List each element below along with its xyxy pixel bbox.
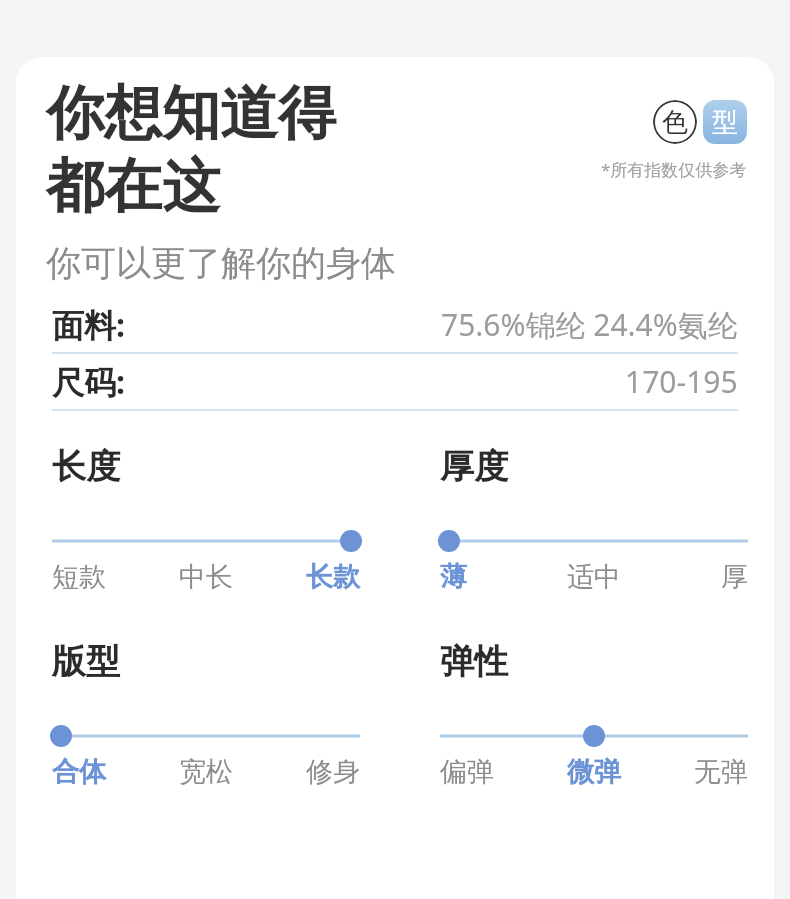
staticText: 型 [712, 106, 738, 139]
staticText: 尺码: [52, 360, 125, 404]
staticText: 75.6%锦纶 24.4%氨纶 [441, 304, 738, 345]
staticText: 短款 [52, 560, 106, 594]
staticText: 偏弹 [440, 755, 494, 789]
button[interactable]: 版型 [52, 640, 360, 789]
button[interactable]: 厚度 [440, 445, 748, 594]
button[interactable]: 长度 [52, 445, 360, 594]
staticText: 宽松 [179, 755, 233, 789]
staticText: 中长 [179, 560, 233, 594]
staticText: 微弹 [567, 755, 621, 789]
button[interactable]: 面料: [52, 297, 738, 354]
staticText: *所有指数仅供参考 [601, 158, 747, 181]
staticText: 适中 [567, 560, 621, 594]
button[interactable]: 尺码: [52, 354, 738, 411]
staticText: 合体 [52, 755, 106, 789]
staticText: 弹性 [440, 640, 508, 683]
staticText: 厚度 [440, 445, 508, 488]
staticText: 薄 [440, 560, 467, 594]
button[interactable]: 色 [653, 100, 697, 144]
staticText: 170-195 [625, 361, 738, 402]
button[interactable]: 型 [703, 100, 747, 144]
staticText: 你想知道得 [46, 77, 336, 150]
staticText: 版型 [52, 640, 120, 683]
staticText: 长款 [306, 560, 360, 594]
staticText: 都在这 [46, 150, 220, 223]
staticText: 长度 [52, 445, 120, 488]
staticText: 修身 [306, 755, 360, 789]
staticText: 无弹 [694, 755, 748, 789]
staticText: 面料: [52, 303, 125, 347]
staticText: 色 [662, 106, 688, 139]
staticText: 你可以更了解你的身体 [46, 241, 396, 285]
button[interactable]: 弹性 [440, 640, 748, 789]
staticText: 厚 [721, 560, 748, 594]
